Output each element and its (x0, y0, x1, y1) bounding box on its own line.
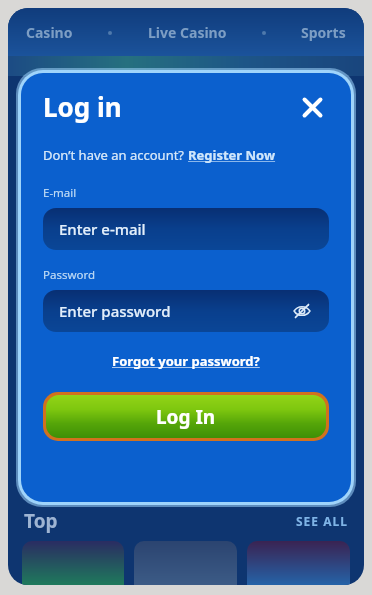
button[interactable] (22, 541, 124, 585)
staticText: Don’t have an account? (43, 146, 188, 164)
button[interactable] (134, 541, 237, 585)
staticText: E-mail (43, 185, 77, 201)
staticText: Log in (43, 89, 122, 124)
button[interactable]: SEE ALL (296, 513, 348, 529)
staticText: Enter e-mail (59, 219, 146, 239)
staticText: Casino (26, 23, 73, 42)
staticText: Sports (301, 23, 346, 42)
staticText: Register Now (188, 146, 276, 164)
button[interactable]: Close (295, 90, 329, 124)
button[interactable]: Log In (43, 392, 329, 441)
button[interactable]: Enter e-mail (43, 208, 329, 250)
staticText: Enter password (59, 301, 171, 321)
button[interactable]: Sports (301, 19, 346, 46)
staticText: Top (24, 508, 58, 534)
button[interactable]: Register Now (188, 146, 276, 164)
staticText: Log In (156, 404, 216, 430)
staticText: Forgot your password? (112, 352, 260, 370)
other: Show password (291, 300, 313, 322)
button[interactable]: Enter password (43, 290, 329, 332)
staticText: Live Casino (148, 23, 227, 42)
button[interactable]: Forgot your password? (112, 352, 260, 370)
button[interactable]: Live Casino (148, 19, 227, 46)
button[interactable] (247, 541, 350, 585)
staticText: SEE ALL (296, 513, 348, 529)
button[interactable]: Casino (26, 19, 73, 46)
staticText: Password (43, 267, 96, 283)
